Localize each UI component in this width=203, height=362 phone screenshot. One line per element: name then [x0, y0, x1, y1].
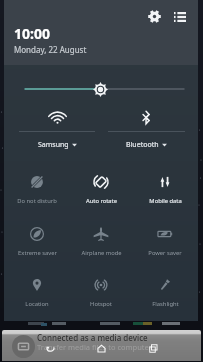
- button[interactable]: Bluetooth: [128, 104, 164, 130]
- staticText: Connected as a media device: [37, 332, 148, 343]
- button[interactable]: Mobile data: [133, 164, 197, 206]
- button[interactable]: Back: [37, 335, 63, 361]
- button[interactable]: Location: [5, 267, 69, 309]
- button[interactable]: Hotspot: [69, 267, 133, 309]
- staticText: Hotspot: [90, 300, 112, 308]
- staticText: Location: [25, 300, 49, 308]
- staticText: Monday, 22 August: [14, 44, 87, 55]
- button[interactable]: Brightness: [92, 81, 108, 97]
- button[interactable]: Flashlight: [133, 267, 197, 309]
- button[interactable]: Airplane mode: [69, 216, 133, 258]
- staticText: Mobile data: [149, 197, 182, 205]
- staticText: 10:00: [14, 24, 50, 43]
- staticText: Power saver: [148, 249, 182, 257]
- button[interactable]: Extreme saver: [5, 216, 69, 258]
- staticText: Samsung: [38, 140, 69, 150]
- button[interactable]: Samsung: [23, 137, 91, 153]
- button[interactable]: Connected as a media device: [2, 330, 201, 361]
- button[interactable]: Recent apps: [140, 335, 166, 361]
- button[interactable]: Settings: [143, 5, 165, 27]
- button[interactable]: Edit quick settings: [169, 6, 191, 28]
- staticText: Flashlight: [152, 300, 179, 308]
- button[interactable]: Home: [88, 335, 114, 361]
- button[interactable]: Power saver: [133, 216, 197, 258]
- staticText: Do not disturb: [17, 197, 57, 205]
- staticText: Extreme saver: [18, 249, 57, 257]
- button[interactable]: Auto rotate: [69, 164, 133, 206]
- staticText: Bluetooth: [126, 140, 159, 150]
- staticText: Airplane mode: [81, 249, 122, 257]
- staticText: Transfer media files to computer: [37, 342, 152, 352]
- staticText: Auto rotate: [86, 197, 117, 205]
- button[interactable]: Bluetooth: [112, 137, 180, 153]
- button[interactable]: Do not disturb: [5, 164, 69, 206]
- button[interactable]: Wi-Fi: [39, 104, 75, 130]
